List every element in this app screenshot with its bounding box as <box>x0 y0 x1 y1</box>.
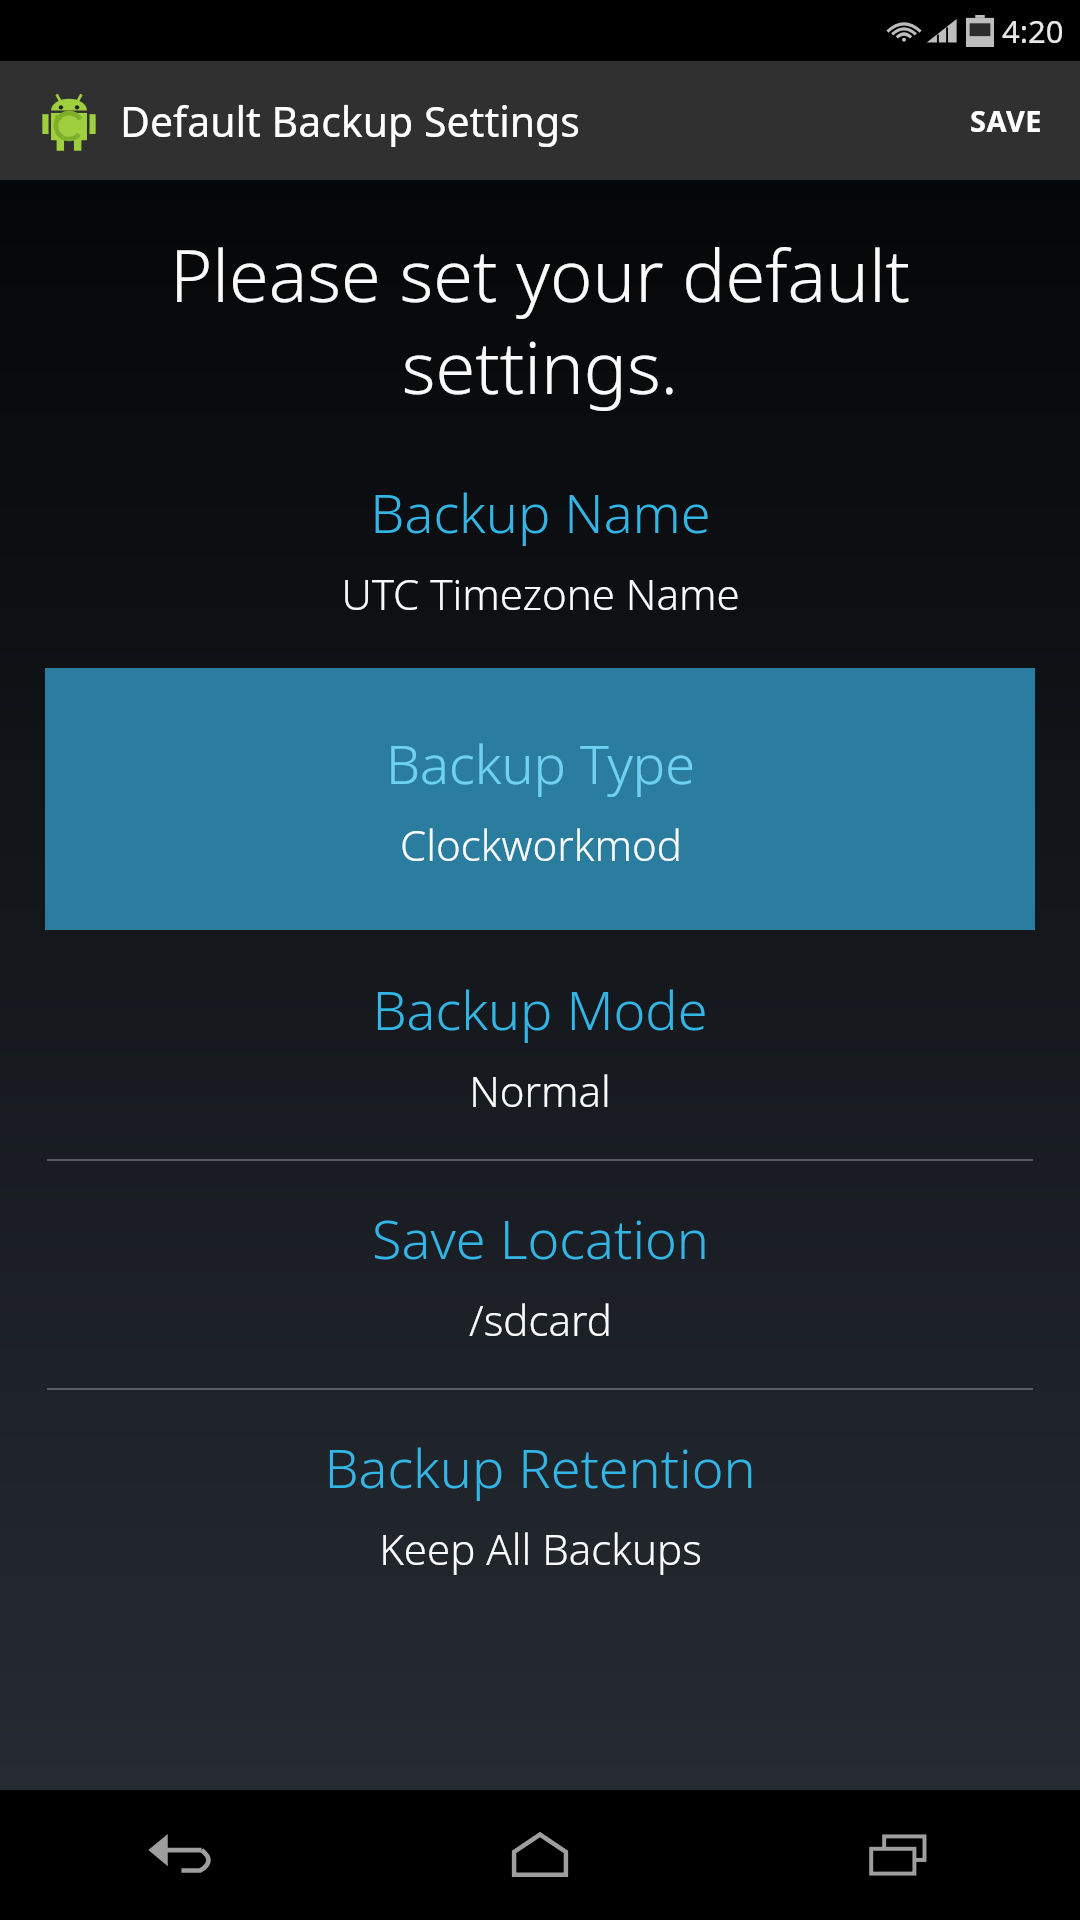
staticText: Backup Name <box>370 475 711 549</box>
staticText: Backup Retention <box>324 1430 756 1504</box>
button[interactable]: Home <box>360 1790 720 1920</box>
staticText: Clockworkmod <box>400 816 682 873</box>
staticText: Backup Type <box>386 726 695 800</box>
staticText: Default Backup Settings <box>120 93 580 149</box>
button[interactable]: Backup Name <box>0 461 1080 636</box>
staticText: /sdcard <box>469 1291 612 1348</box>
button[interactable]: Backup Mode <box>0 958 1080 1133</box>
button[interactable]: Back <box>0 1790 360 1920</box>
button[interactable]: Backup Type <box>45 668 1035 930</box>
staticText: Keep All Backups <box>379 1520 702 1577</box>
staticText: Normal <box>469 1062 611 1119</box>
button[interactable]: SAVE <box>950 77 1062 164</box>
button[interactable]: Save Location <box>0 1187 1080 1362</box>
staticText: 4:20 <box>1002 10 1064 52</box>
button[interactable]: Recent apps <box>720 1790 1080 1920</box>
staticText: Save Location <box>372 1201 709 1275</box>
staticText: SAVE <box>970 101 1042 140</box>
staticText: UTC Timezone Name <box>341 565 740 622</box>
button[interactable]: Backup Retention <box>0 1416 1080 1591</box>
staticText: Please set your default settings. <box>46 225 1034 415</box>
staticText: Backup Mode <box>372 972 708 1046</box>
